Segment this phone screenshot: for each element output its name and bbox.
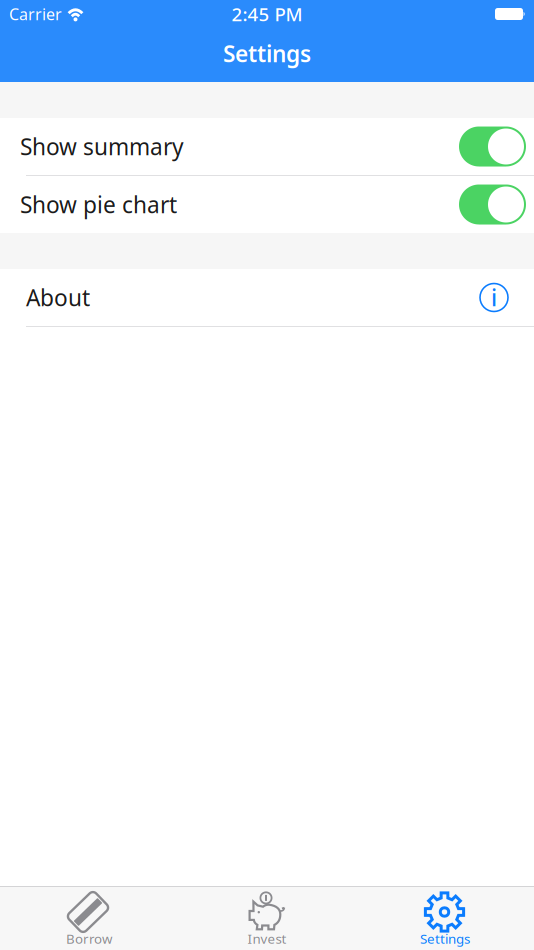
staticText: 2:45 PM bbox=[231, 2, 302, 26]
staticText: Show pie chart bbox=[20, 189, 177, 219]
button[interactable]: About bbox=[0, 269, 534, 326]
staticText: Settings bbox=[420, 930, 470, 947]
button[interactable]: Show summary bbox=[0, 118, 534, 175]
button[interactable]: Invest bbox=[178, 887, 356, 950]
staticText: Borrow bbox=[66, 930, 112, 947]
staticText: Settings bbox=[223, 38, 311, 68]
staticText: Invest bbox=[247, 930, 286, 947]
staticText: i bbox=[491, 282, 497, 312]
staticText: Show summary bbox=[20, 131, 184, 161]
staticText: About bbox=[26, 282, 90, 312]
staticText: Carrier bbox=[9, 3, 62, 25]
button[interactable]: Borrow bbox=[0, 887, 178, 950]
button[interactable]: Show pie chart bbox=[0, 176, 534, 233]
button[interactable]: Settings bbox=[356, 887, 534, 950]
